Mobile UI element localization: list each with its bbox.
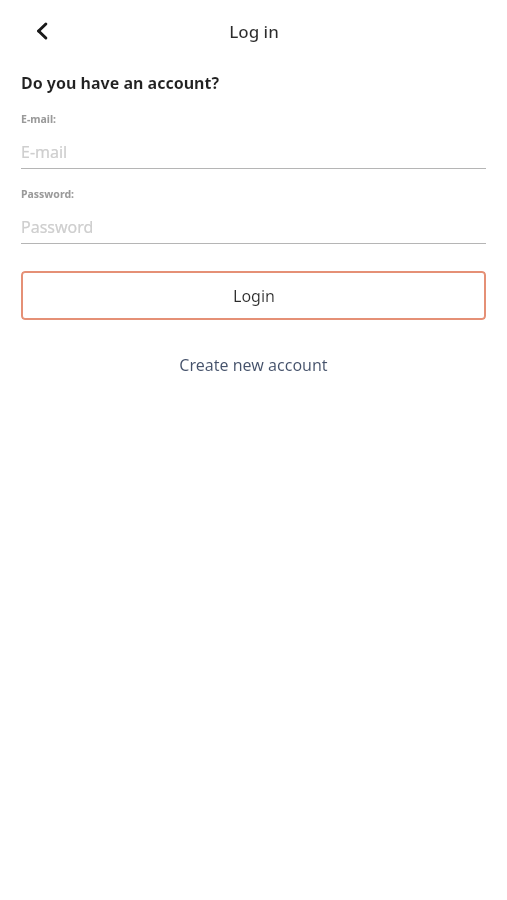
staticText: Password: <box>21 187 74 201</box>
staticText: E-mail <box>21 141 68 163</box>
button[interactable]: E-mail <box>21 136 486 168</box>
staticText: Create new account <box>179 354 328 376</box>
staticText: Login <box>233 285 275 307</box>
staticText: Do you have an account? <box>21 72 220 94</box>
button[interactable]: Password <box>21 211 486 243</box>
staticText: E-mail: <box>21 112 56 126</box>
button[interactable]: Login <box>21 271 486 320</box>
staticText: Log in <box>229 20 279 43</box>
staticText: Password <box>21 216 94 238</box>
button[interactable]: Back <box>22 10 64 52</box>
button[interactable]: Create new account <box>167 348 340 382</box>
